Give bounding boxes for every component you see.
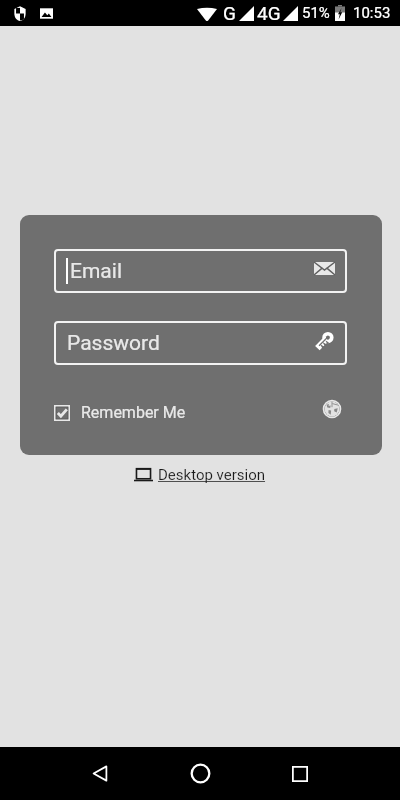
button[interactable]: Remember Me <box>54 403 186 422</box>
staticText: 51% <box>302 4 330 22</box>
staticText: 10:53 <box>353 4 391 22</box>
staticText: Email <box>70 259 122 284</box>
staticText: Remember Me <box>81 403 186 422</box>
button[interactable]: Language <box>321 398 343 420</box>
button[interactable]: Password <box>54 321 347 365</box>
button[interactable]: Email <box>54 249 347 293</box>
staticText: Desktop version <box>158 466 266 484</box>
button[interactable]: Desktop version <box>134 466 266 484</box>
button[interactable]: Recents <box>266 747 334 800</box>
staticText: 4G <box>257 2 281 24</box>
staticText: G <box>223 2 236 24</box>
staticText: Password <box>67 331 160 356</box>
button[interactable]: Back <box>66 747 134 800</box>
button[interactable]: Home <box>166 747 234 800</box>
